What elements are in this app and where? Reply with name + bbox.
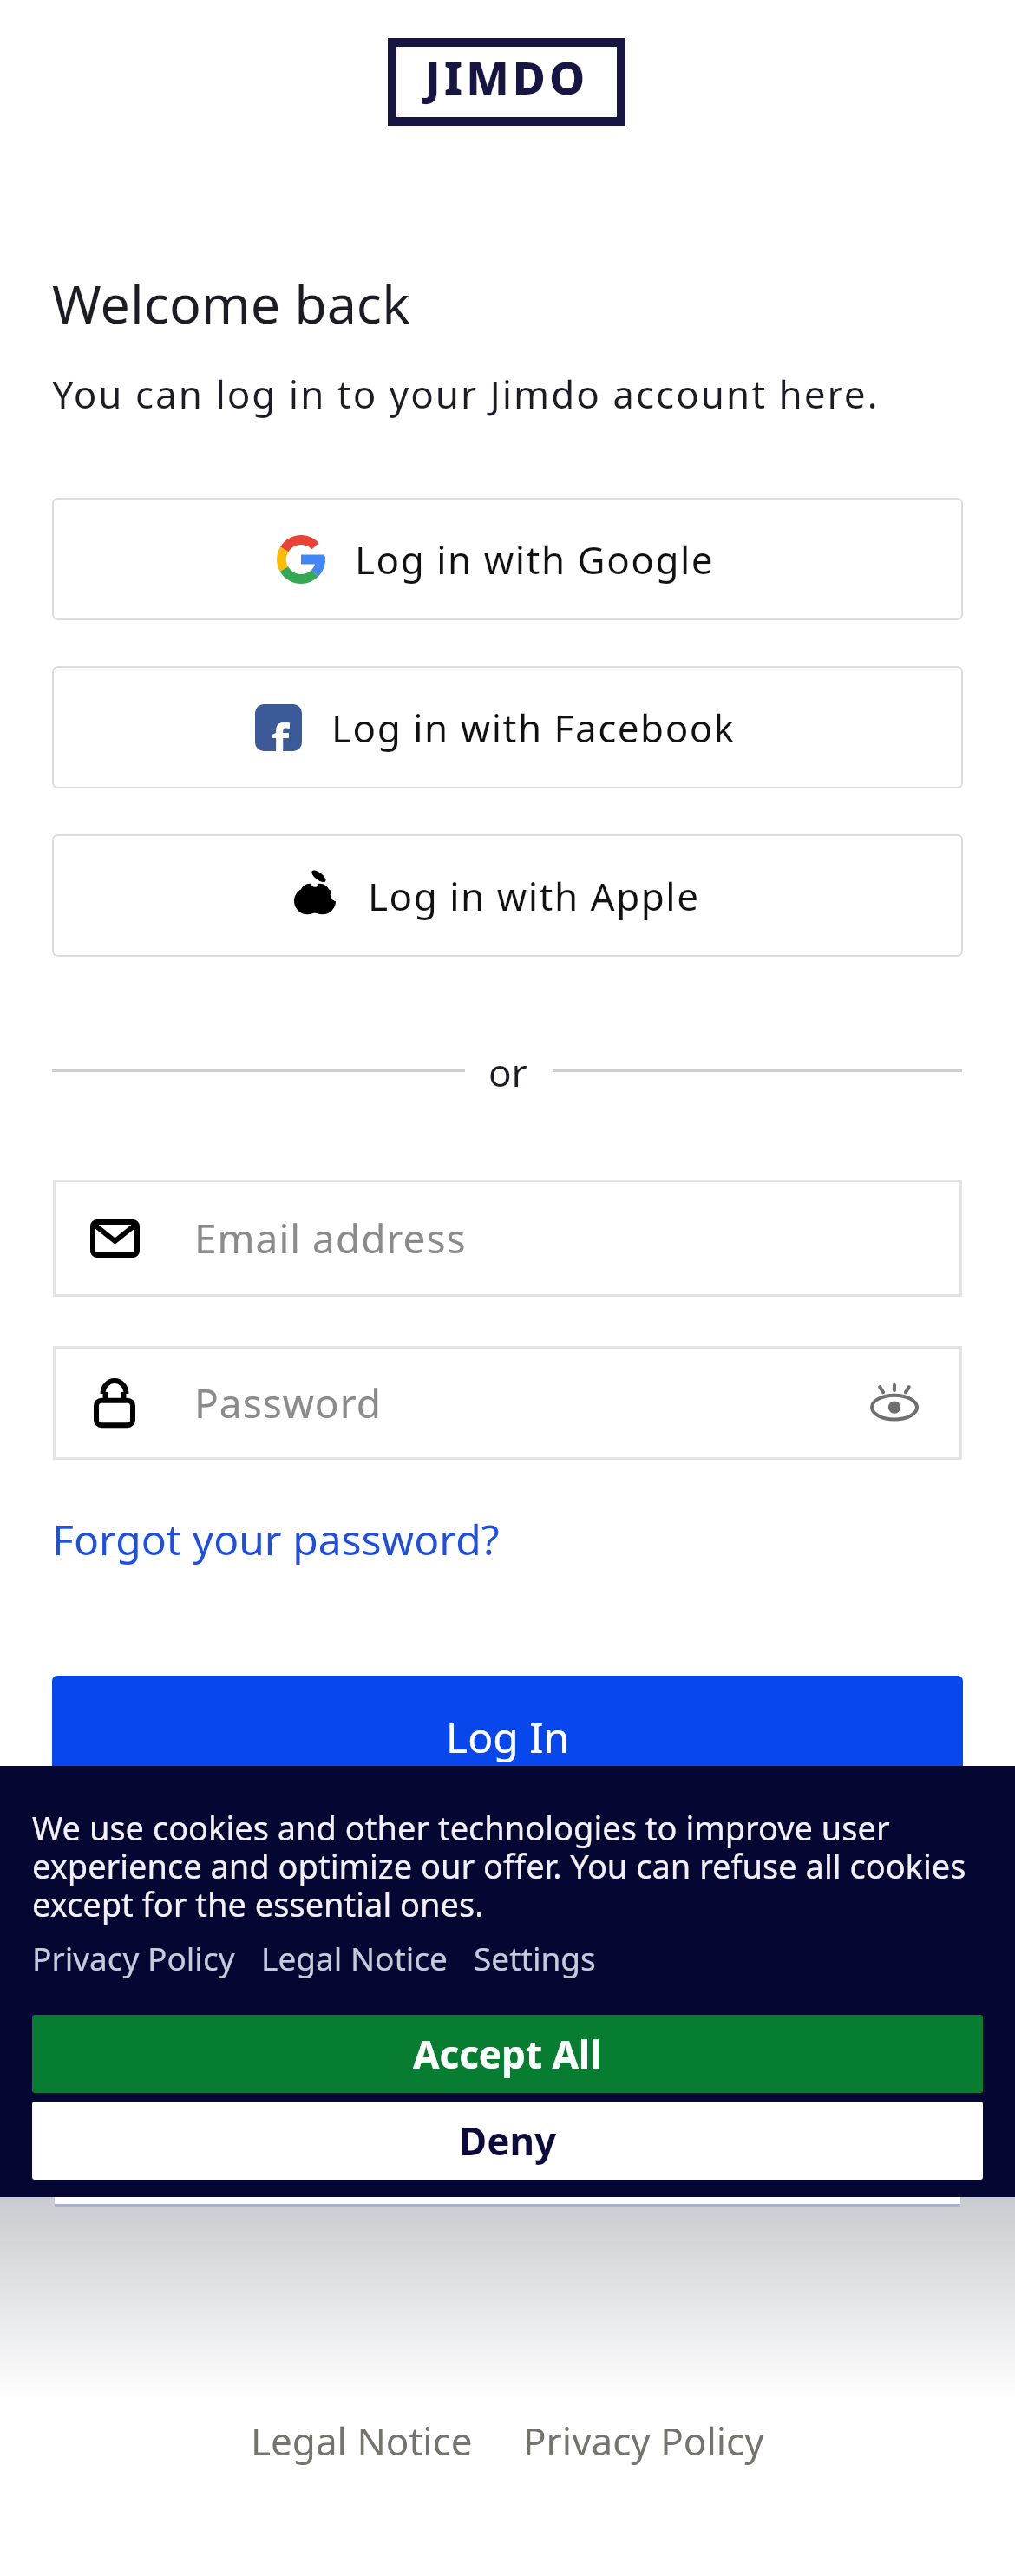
staticText: JIMDO bbox=[425, 46, 589, 108]
staticText: Deny bbox=[459, 2115, 557, 2167]
staticText: f bbox=[272, 709, 290, 751]
staticText: Log in with Facebook bbox=[331, 702, 736, 754]
button[interactable]: Log In bbox=[52, 1676, 963, 1797]
staticText: Welcome back bbox=[52, 267, 410, 339]
staticText: Log in with Apple bbox=[368, 870, 700, 922]
button[interactable]: Privacy Policy bbox=[523, 2415, 764, 2467]
button[interactable]: Log in with Apple bbox=[52, 834, 963, 957]
staticText: Log in with Google bbox=[355, 533, 715, 585]
staticText: Accept All bbox=[413, 2028, 602, 2080]
staticText: Password bbox=[194, 1376, 383, 1430]
button[interactable]: Deny bbox=[32, 2102, 983, 2180]
button[interactable]: Log in with Google bbox=[52, 498, 963, 620]
button[interactable]: f bbox=[52, 666, 963, 788]
staticText: Log In bbox=[446, 1709, 570, 1765]
button[interactable]: Privacy Policy bbox=[32, 1936, 235, 1979]
staticText: You can log in to your Jimdo account her… bbox=[52, 368, 880, 420]
staticText: We use cookies and other technologies to… bbox=[32, 1805, 966, 1926]
button[interactable]: Forgot your password? bbox=[52, 1511, 500, 1567]
button[interactable]: Email address bbox=[53, 1180, 962, 1297]
staticText: or bbox=[488, 1046, 527, 1098]
button[interactable]: Accept All bbox=[32, 2015, 983, 2093]
button[interactable]: Legal Notice bbox=[251, 2415, 473, 2467]
staticText: Email address bbox=[194, 1211, 467, 1265]
button[interactable]: Legal Notice bbox=[261, 1936, 448, 1979]
button[interactable]: Password bbox=[53, 1346, 962, 1460]
button[interactable]: Settings bbox=[474, 1936, 596, 1979]
